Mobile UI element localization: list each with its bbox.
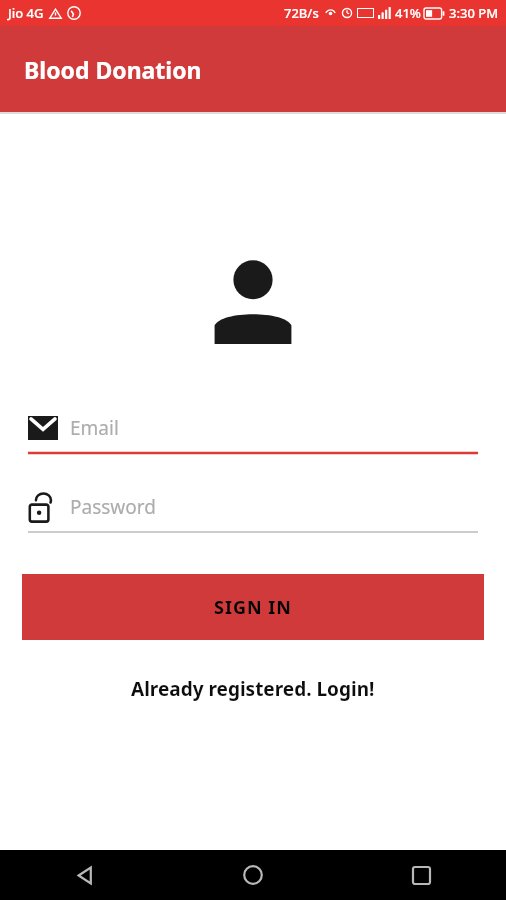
staticText: 3:30 PM bbox=[449, 4, 499, 22]
other: Profile bbox=[213, 260, 293, 344]
staticText: Email bbox=[70, 415, 119, 441]
button[interactable]: Email bbox=[28, 408, 478, 456]
staticText: 72B/s bbox=[284, 4, 319, 22]
staticText: Jio 4G bbox=[8, 4, 44, 22]
other: Password bbox=[28, 490, 58, 524]
staticText: SIGN IN bbox=[214, 595, 292, 620]
staticText: Already registered. Login! bbox=[131, 676, 375, 702]
staticText: Blood Donation bbox=[24, 54, 202, 85]
other: Email bbox=[28, 413, 58, 443]
button[interactable]: Home bbox=[168, 850, 337, 900]
button[interactable]: Password bbox=[28, 487, 478, 535]
button[interactable]: SIGN IN bbox=[22, 574, 484, 640]
button[interactable]: Back bbox=[0, 850, 168, 900]
staticText: 41% bbox=[395, 4, 421, 22]
staticText: Password bbox=[70, 494, 156, 520]
button[interactable]: Already registered. Login! bbox=[0, 676, 506, 702]
button[interactable]: Recents bbox=[337, 850, 506, 900]
